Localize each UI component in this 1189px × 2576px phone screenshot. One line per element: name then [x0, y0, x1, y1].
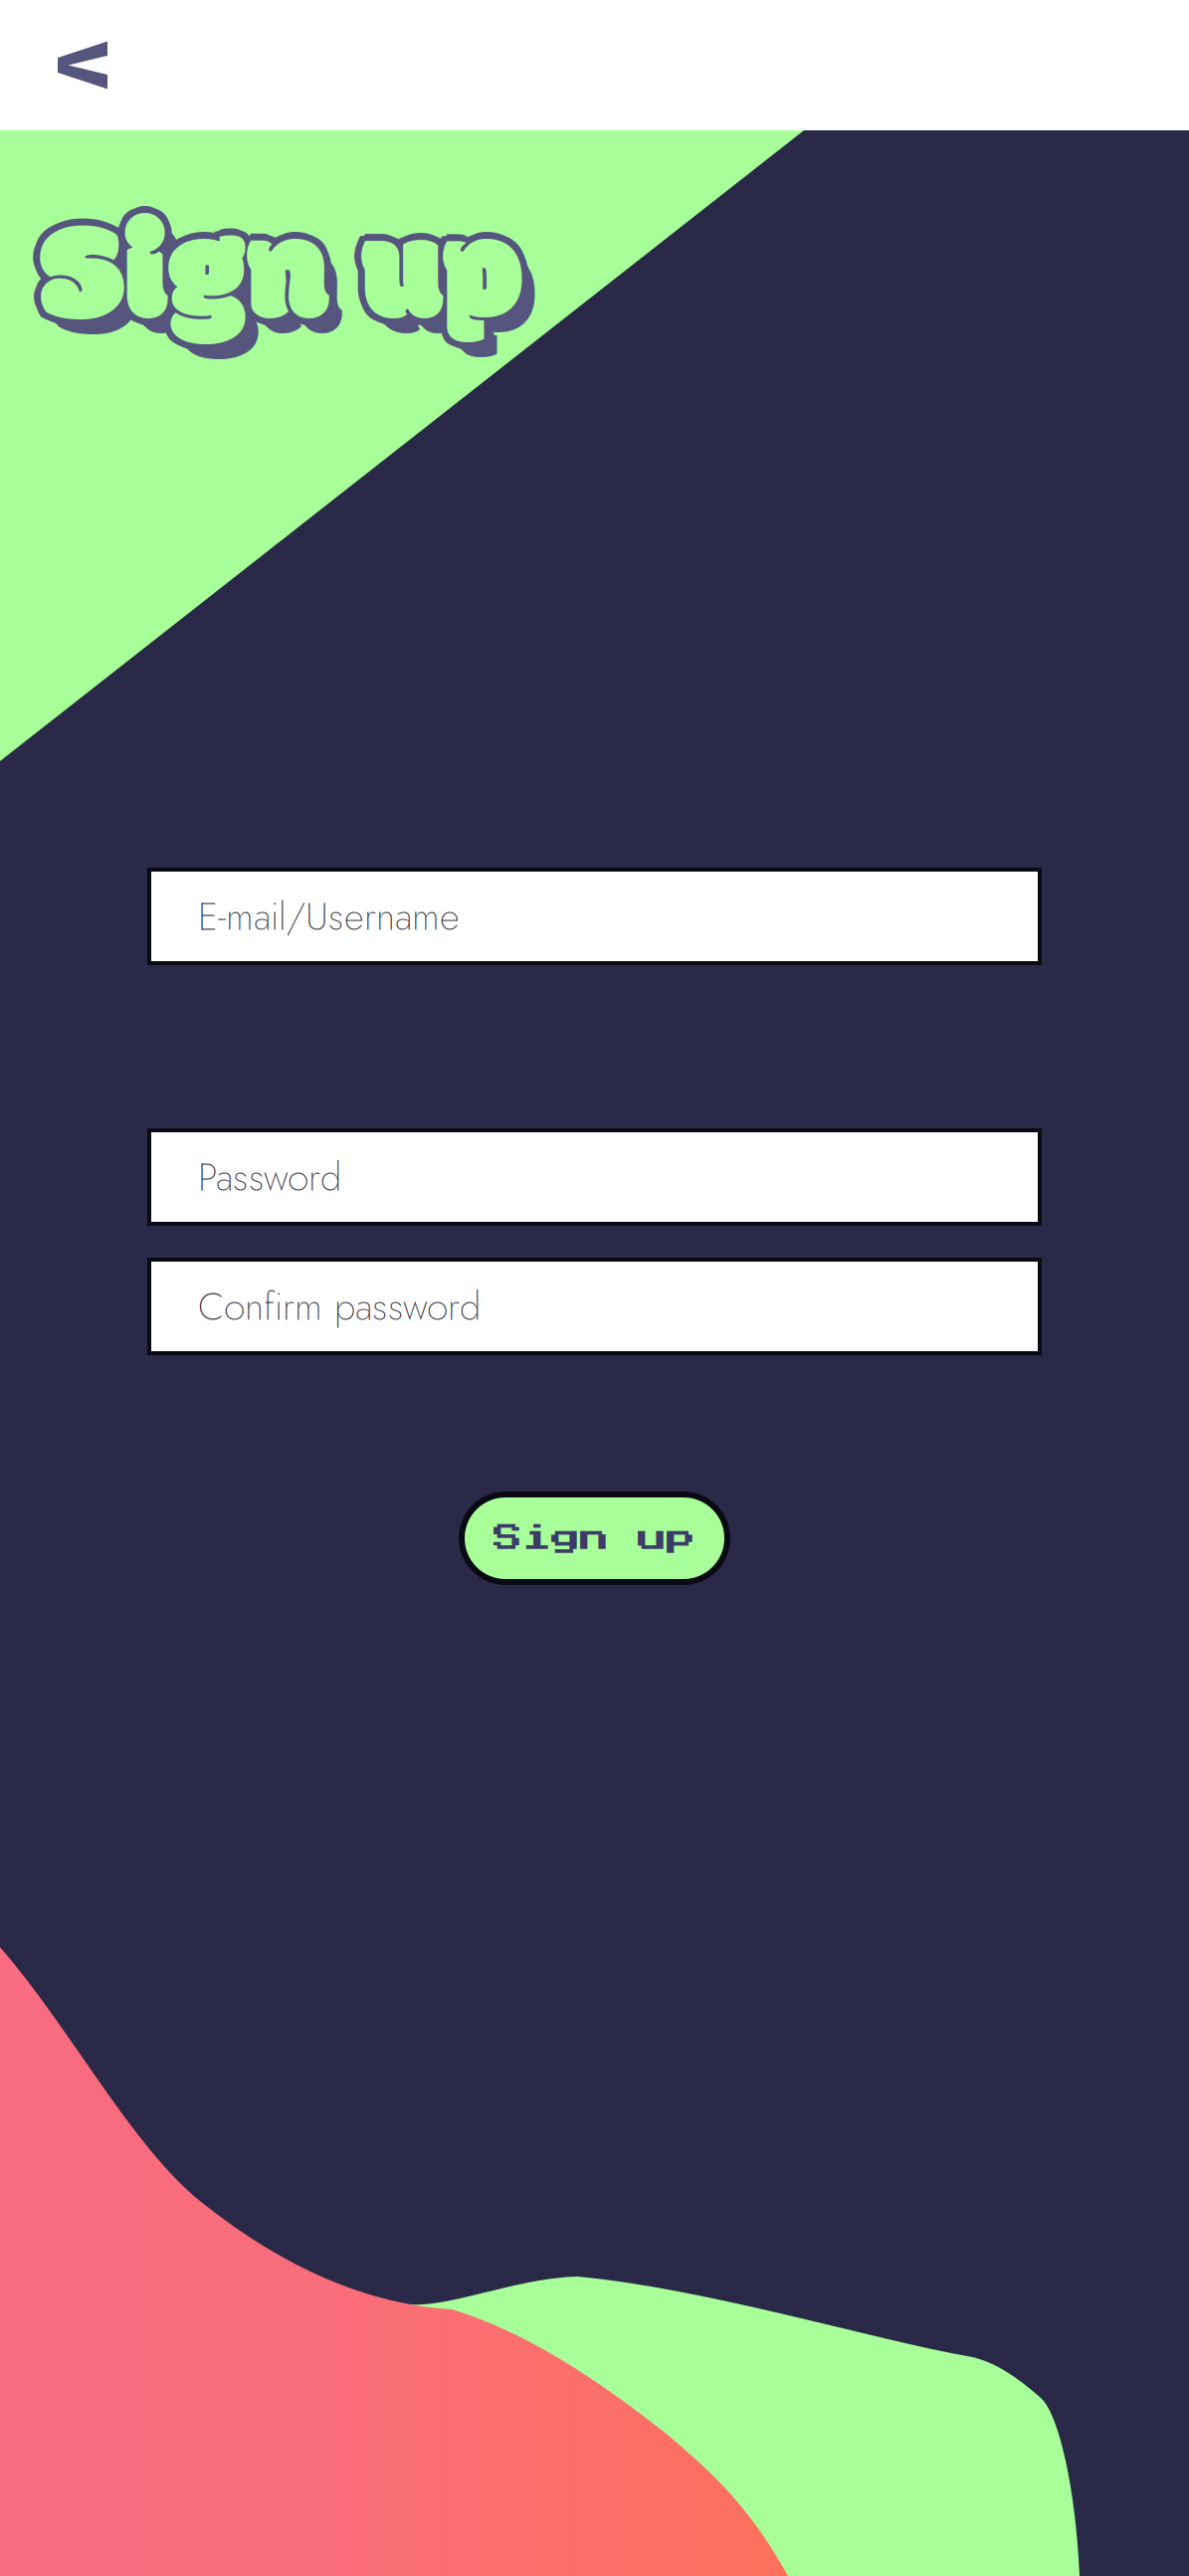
- staticText: Sign up: [35, 170, 518, 386]
- button[interactable]: Password: [149, 1130, 1040, 1224]
- staticText: Sign up: [48, 184, 531, 400]
- staticText: Sign up: [40, 182, 523, 398]
- staticText: Sign up: [47, 175, 530, 391]
- staticText: Password: [198, 1149, 341, 1205]
- staticText: Sign up: [43, 178, 526, 394]
- staticText: Sign up: [40, 168, 523, 384]
- staticText: Sign up: [45, 170, 528, 386]
- staticText: E-mail/Username: [198, 889, 460, 944]
- staticText: Sign up: [494, 1524, 695, 1553]
- staticText: Sign up: [35, 180, 518, 396]
- button[interactable]: Confirm password: [149, 1260, 1040, 1353]
- staticText: Confirm password: [198, 1279, 481, 1334]
- staticText: Sign up: [45, 181, 528, 397]
- button[interactable]: E-mail/Username: [149, 870, 1040, 963]
- button[interactable]: Back: [0, 0, 151, 130]
- staticText: Sign up: [50, 187, 533, 403]
- staticText: Sign up: [33, 175, 516, 391]
- staticText: Sign up: [53, 190, 536, 406]
- staticText: Sign up: [40, 175, 523, 391]
- staticText: Sign up: [45, 180, 528, 396]
- button[interactable]: Sign up: [462, 1494, 727, 1582]
